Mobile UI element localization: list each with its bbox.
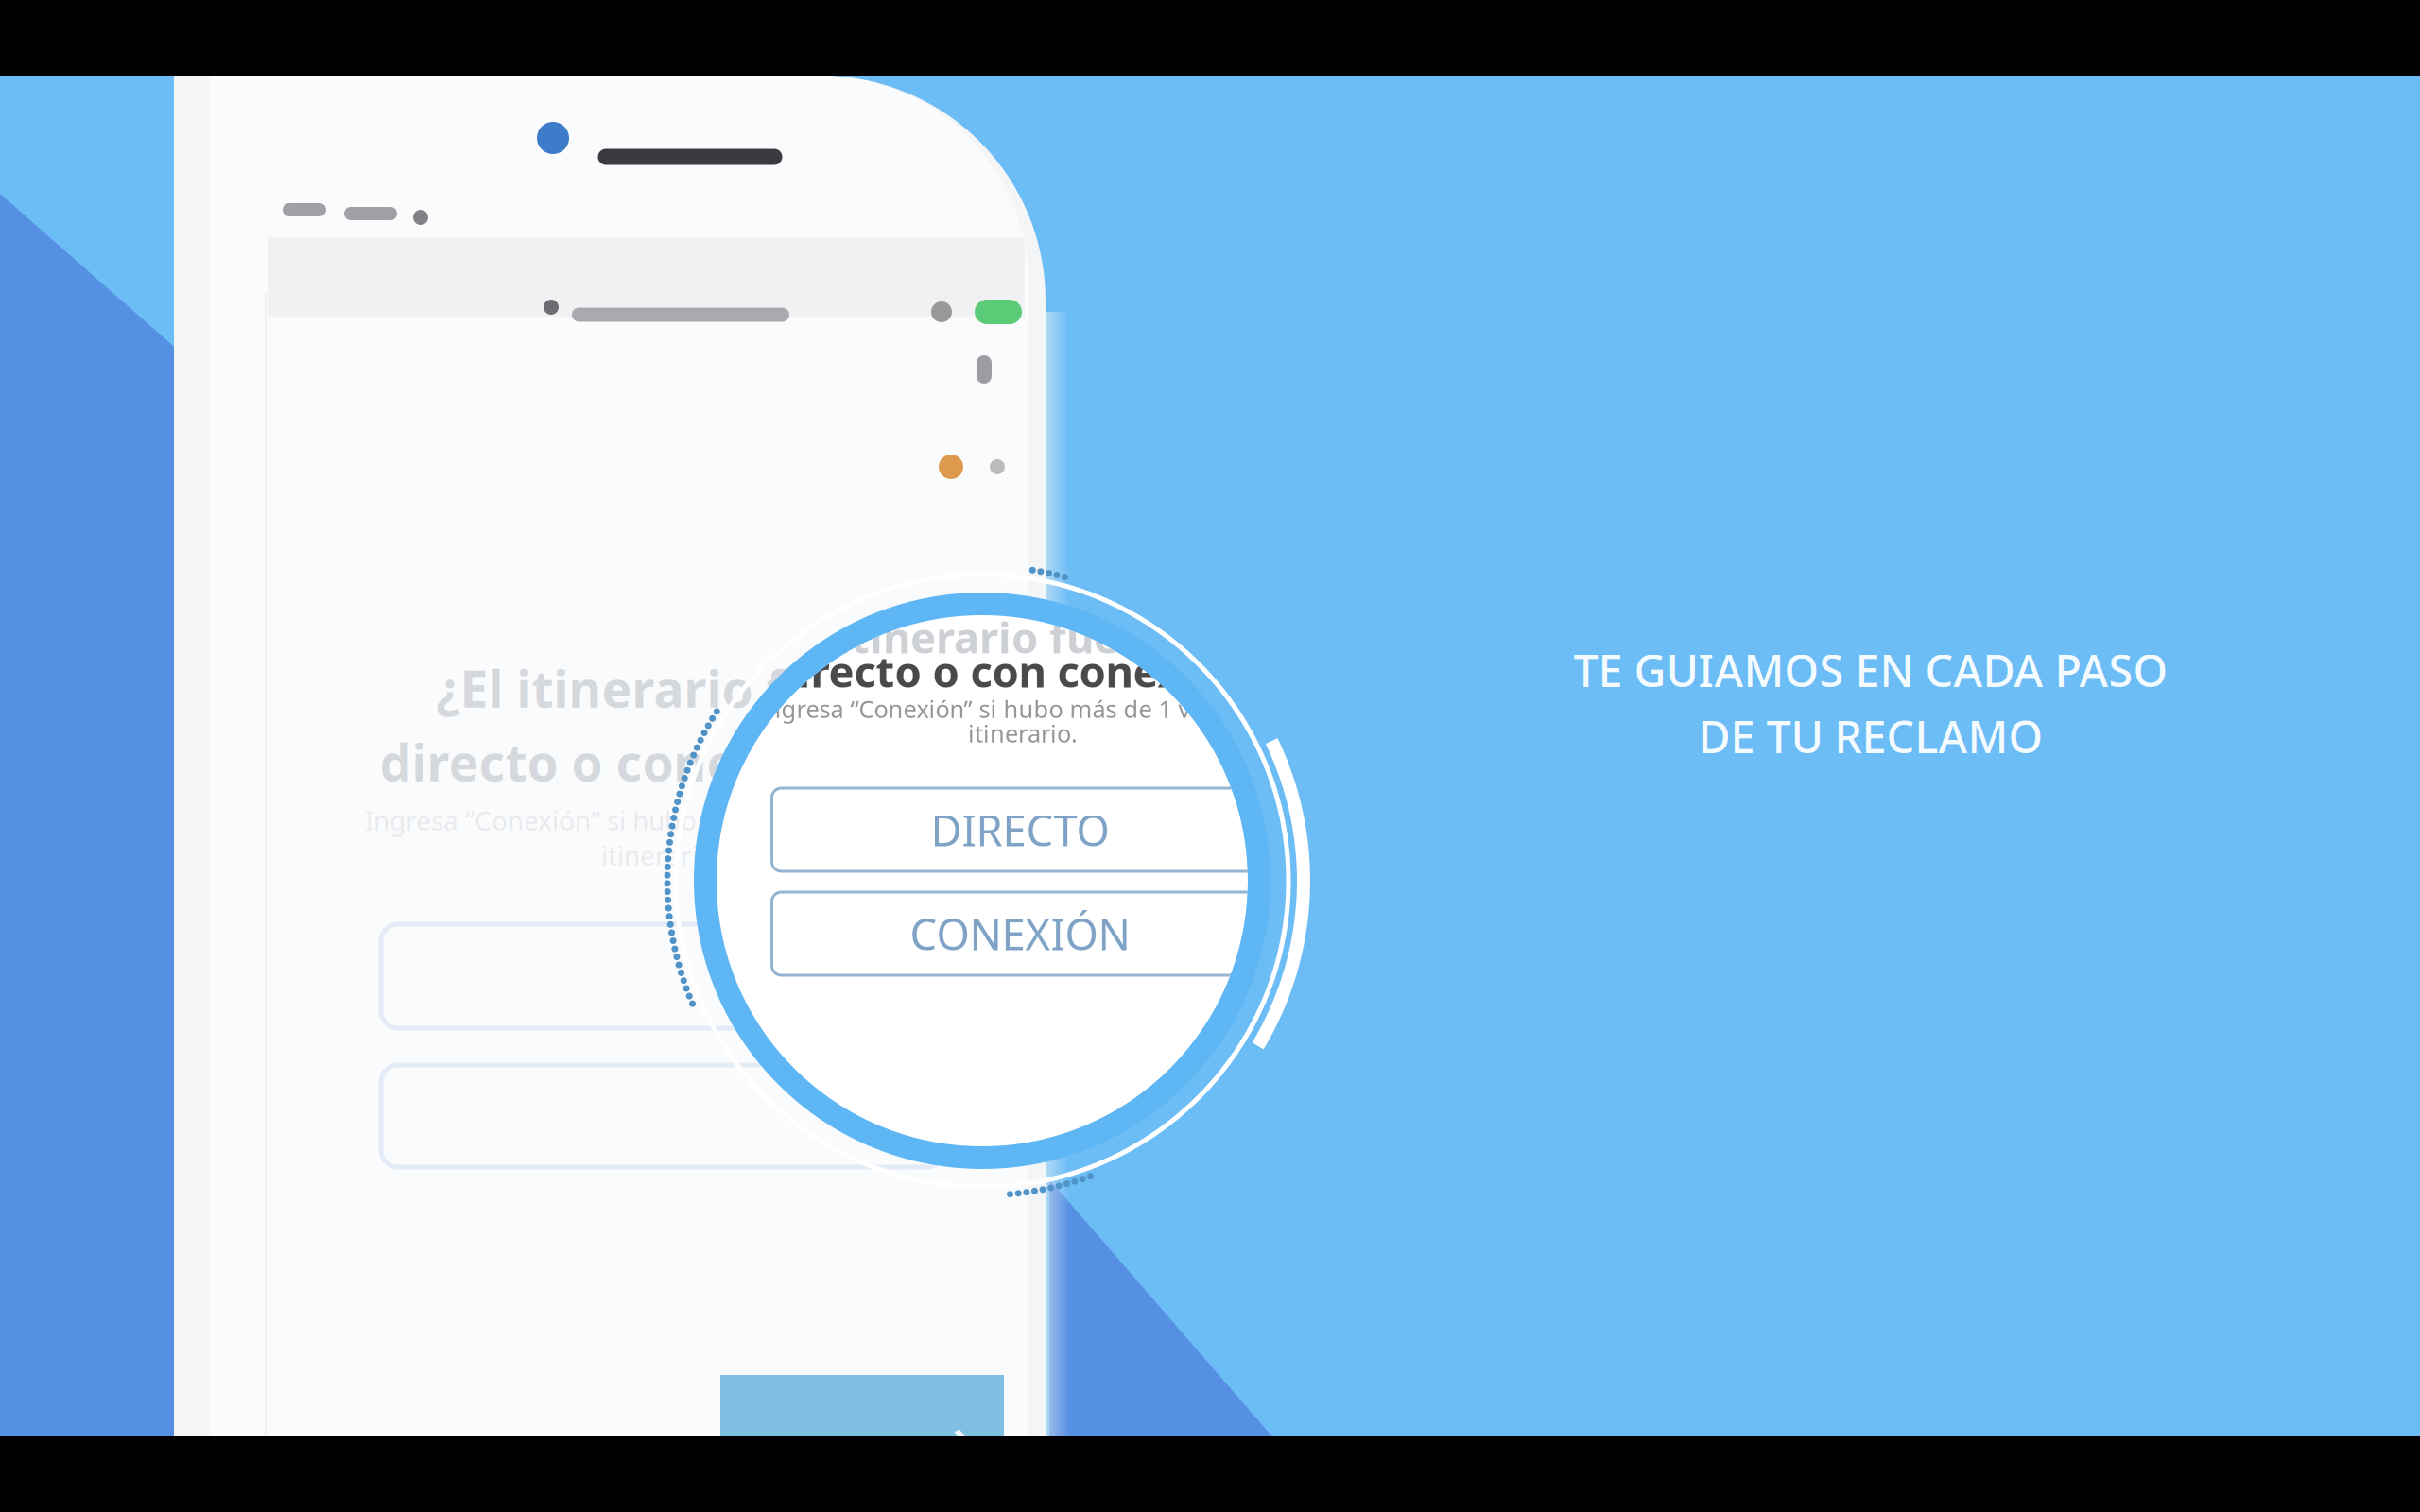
staticText: › [951,1383,976,1490]
button[interactable]: DIRECTO [381,924,944,1028]
button[interactable]: DIRECTO [772,788,1268,871]
button[interactable]: Continuar [720,1375,1004,1498]
staticText: itinerario fue [838,608,1119,665]
staticText: directo o conexión? [380,728,868,795]
staticText: TE GUIAMOS EN CADA PASO [1573,641,2168,699]
staticText: Ingresa “Conexión” si hubo más de 1 vuel… [365,803,959,838]
staticText: directo o con conexión? [770,643,1270,699]
staticText: CONEXIÓN [910,905,1130,962]
button[interactable]: CONEXIÓN [772,892,1268,975]
staticText: itinerario. [968,717,1078,749]
staticText: Ingresa “Conexión” si hubo más de 1 vuel… [758,693,1305,725]
button[interactable]: CONEXIÓN [381,1065,944,1167]
staticText: itinerario. [601,838,722,873]
staticText: DE TU RECLAMO [1698,707,2043,765]
staticText: DIRECTO [931,801,1109,858]
staticText: ¿El itinerario fue [436,655,849,721]
